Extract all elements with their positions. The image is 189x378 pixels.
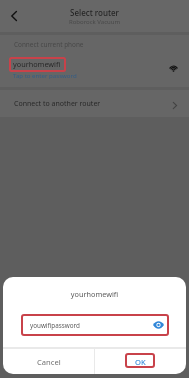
staticText: yourhomewifi bbox=[13, 59, 61, 69]
button[interactable]: OK bbox=[95, 349, 186, 374]
button[interactable]: Show password bbox=[153, 322, 164, 328]
staticText: Connect current phone bbox=[14, 40, 84, 49]
button[interactable]: yourhomewifi bbox=[0, 50, 189, 87]
staticText: Cancel bbox=[37, 357, 61, 367]
staticText: Connect to another router bbox=[14, 99, 101, 109]
button[interactable]: Cancel bbox=[3, 349, 94, 374]
staticText: Roborock Vacuum bbox=[0, 18, 189, 26]
staticText: Tap to enter password bbox=[13, 71, 77, 79]
staticText: OK bbox=[135, 357, 146, 367]
staticText: yourhomewifi bbox=[3, 289, 186, 299]
button[interactable]: youwifipassword bbox=[22, 314, 164, 336]
staticText: youwifipassword bbox=[30, 321, 161, 330]
button[interactable]: Back bbox=[5, 7, 23, 25]
button[interactable]: Connect to another router bbox=[0, 90, 189, 117]
staticText: Select router bbox=[0, 7, 189, 18]
